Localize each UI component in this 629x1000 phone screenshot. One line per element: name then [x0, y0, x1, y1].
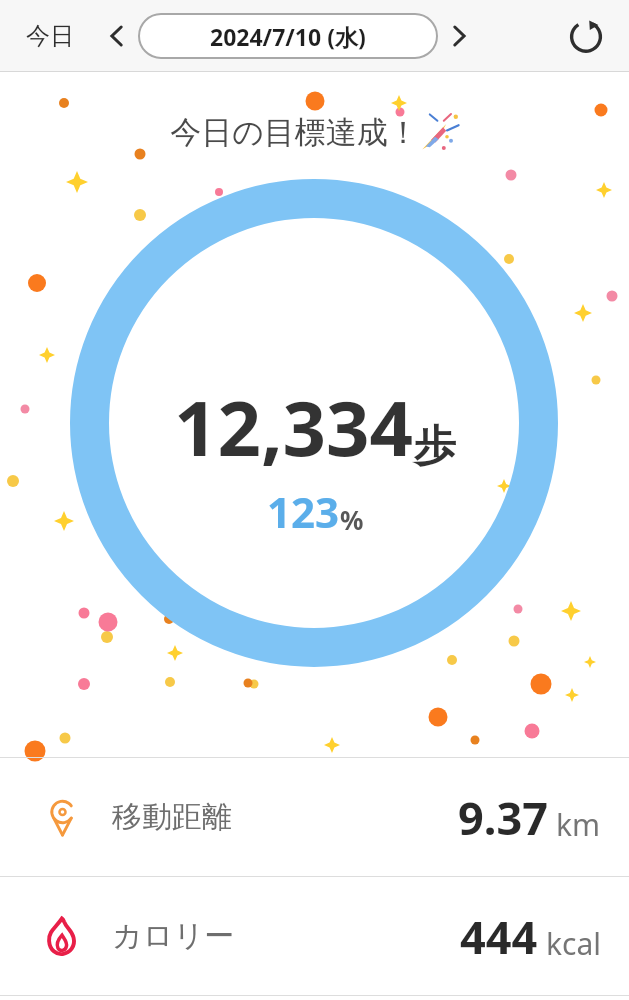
- staticText: %: [340, 502, 364, 537]
- staticText: 12,334: [174, 375, 414, 479]
- button[interactable]: Next day: [442, 19, 476, 53]
- button[interactable]: 今日: [22, 13, 78, 59]
- staticText: 444: [460, 906, 538, 967]
- button[interactable]: 2024/7/10 (水): [138, 13, 438, 59]
- button[interactable]: 移動距離: [0, 758, 629, 876]
- staticText: 移動距離: [112, 798, 232, 836]
- staticText: 9.37: [458, 787, 548, 848]
- button[interactable]: Previous day: [100, 19, 134, 53]
- staticText: kcal: [546, 923, 601, 964]
- staticText: 今日: [26, 21, 74, 51]
- staticText: 123: [267, 483, 340, 540]
- staticText: 2024/7/10 (水): [210, 21, 366, 52]
- staticText: カロリー: [112, 917, 235, 955]
- staticText: 歩: [414, 420, 456, 473]
- button[interactable]: Refresh: [565, 15, 607, 57]
- staticText: km: [556, 804, 601, 845]
- button[interactable]: カロリー: [0, 877, 629, 995]
- staticText: 今日の目標達成！: [170, 113, 419, 152]
